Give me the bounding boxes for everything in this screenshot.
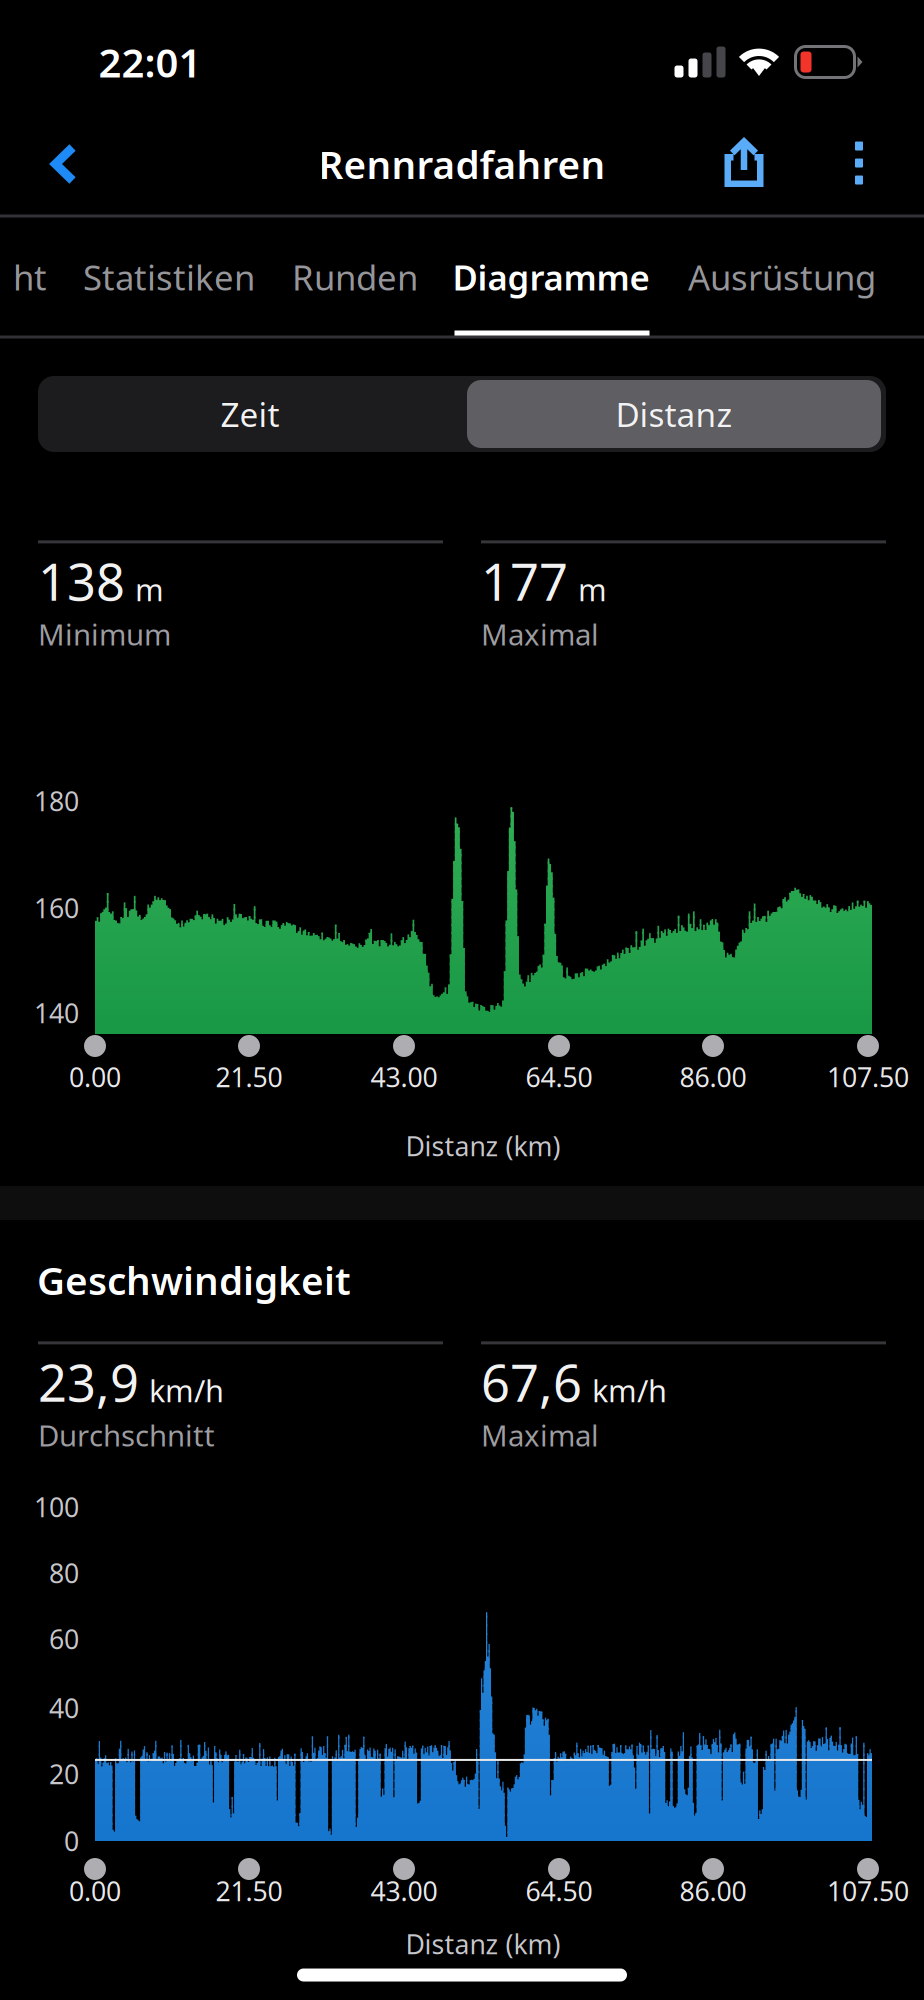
staticText: 107.50 xyxy=(827,1059,909,1095)
button[interactable]: Statistiken xyxy=(73,218,265,336)
staticText: m xyxy=(135,569,164,610)
staticText: 22:01 xyxy=(98,35,201,88)
staticText: 160 xyxy=(34,890,79,926)
staticText: Maximal xyxy=(481,1416,599,1455)
staticText: Diagramme xyxy=(452,254,649,300)
staticText: 140 xyxy=(34,995,79,1031)
staticText: 60 xyxy=(49,1621,79,1657)
staticText: 21.50 xyxy=(215,1059,282,1095)
staticText: 107.50 xyxy=(827,1873,909,1909)
staticText: 86.00 xyxy=(679,1873,746,1909)
staticText: 40 xyxy=(49,1690,79,1726)
staticText: Durchschnitt xyxy=(38,1416,215,1455)
button[interactable]: Ausrüstung xyxy=(677,218,887,336)
button[interactable]: Back xyxy=(21,115,106,212)
staticText: 177 xyxy=(481,547,568,615)
staticText: Runden xyxy=(292,254,418,300)
staticText: Minimum xyxy=(38,615,171,654)
staticText: Maximal xyxy=(481,615,599,654)
staticText: 138 xyxy=(38,547,125,615)
staticText: Distanz (km) xyxy=(405,1926,560,1962)
button[interactable]: More options xyxy=(821,119,897,206)
staticText: Distanz xyxy=(615,392,732,436)
button[interactable]: ht xyxy=(5,218,55,336)
button[interactable]: Share xyxy=(698,115,789,209)
staticText: Ausrüstung xyxy=(688,254,876,300)
staticText: 43.00 xyxy=(370,1873,437,1909)
staticText: 64.50 xyxy=(525,1873,592,1909)
staticText: 64.50 xyxy=(525,1059,592,1095)
staticText: 0 xyxy=(64,1823,79,1859)
staticText: Statistiken xyxy=(83,254,255,300)
staticText: 86.00 xyxy=(679,1059,746,1095)
staticText: km/h xyxy=(592,1370,667,1411)
staticText: 43.00 xyxy=(370,1059,437,1095)
staticText: km/h xyxy=(149,1370,224,1411)
staticText: Distanz (km) xyxy=(405,1128,560,1164)
staticText: 67,6 xyxy=(481,1348,582,1416)
staticText: Zeit xyxy=(220,392,279,436)
staticText: m xyxy=(578,569,607,610)
staticText: 21.50 xyxy=(215,1873,282,1909)
staticText: 23,9 xyxy=(38,1348,139,1416)
staticText: Geschwindigkeit xyxy=(37,1254,351,1306)
button[interactable]: Runden xyxy=(284,218,426,336)
button[interactable]: Zeit xyxy=(38,376,462,452)
staticText: ht xyxy=(13,254,47,300)
staticText: 80 xyxy=(49,1555,79,1591)
staticText: Rennradfahren xyxy=(318,138,605,190)
staticText: 180 xyxy=(34,783,79,819)
staticText: 0.00 xyxy=(69,1873,121,1909)
button[interactable]: Distanz xyxy=(462,376,886,452)
button[interactable]: Diagramme xyxy=(445,218,657,336)
staticText: 0.00 xyxy=(69,1059,121,1095)
staticText: 100 xyxy=(34,1489,79,1525)
staticText: 20 xyxy=(49,1756,79,1792)
